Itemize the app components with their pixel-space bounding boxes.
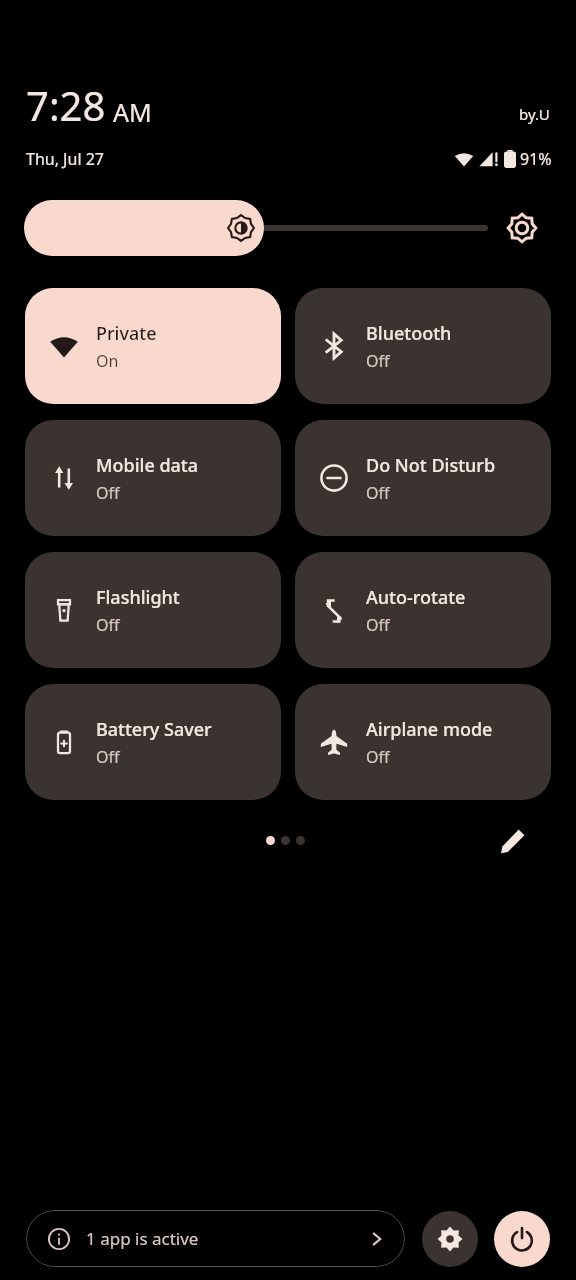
staticText: Off xyxy=(96,482,120,504)
staticText: Do Not Disturb xyxy=(366,453,496,478)
staticText: 91% xyxy=(520,148,552,170)
button[interactable]: Do Not Disturb xyxy=(295,420,551,536)
staticText: Mobile data xyxy=(96,453,199,478)
staticText: AM xyxy=(113,95,152,129)
button[interactable]: Auto-rotate xyxy=(295,552,551,668)
staticText: Bluetooth xyxy=(366,321,452,346)
staticText: Off xyxy=(366,482,390,504)
button[interactable]: Battery Saver xyxy=(25,684,281,800)
staticText: Thu, Jul 27 xyxy=(26,148,104,170)
button[interactable]: Airplane mode xyxy=(295,684,551,800)
button[interactable]: Private xyxy=(25,288,281,404)
staticText: Off xyxy=(96,746,120,768)
staticText: Off xyxy=(366,350,390,372)
button[interactable]: Brightness xyxy=(24,200,488,256)
staticText: Airplane mode xyxy=(366,717,493,742)
button[interactable]: Mobile data xyxy=(25,420,281,536)
staticText: by.U xyxy=(519,104,550,124)
staticText: Off xyxy=(366,614,390,636)
staticText: Battery Saver xyxy=(96,717,212,742)
button[interactable]: Auto brightness xyxy=(500,206,544,250)
button[interactable]: 1 app is active xyxy=(26,1210,405,1267)
button[interactable]: Power xyxy=(494,1211,550,1267)
button[interactable]: Bluetooth xyxy=(295,288,551,404)
staticText: Auto-rotate xyxy=(366,585,466,610)
staticText: On xyxy=(96,350,119,372)
staticText: 7:28 xyxy=(26,78,106,132)
button[interactable]: Flashlight xyxy=(25,552,281,668)
staticText: Private xyxy=(96,321,157,346)
staticText: Off xyxy=(366,746,390,768)
button[interactable]: Settings xyxy=(422,1211,478,1267)
staticText: Off xyxy=(96,614,120,636)
staticText: Flashlight xyxy=(96,585,180,610)
button[interactable]: Edit tiles xyxy=(492,820,534,862)
staticText: 1 app is active xyxy=(86,1227,199,1250)
